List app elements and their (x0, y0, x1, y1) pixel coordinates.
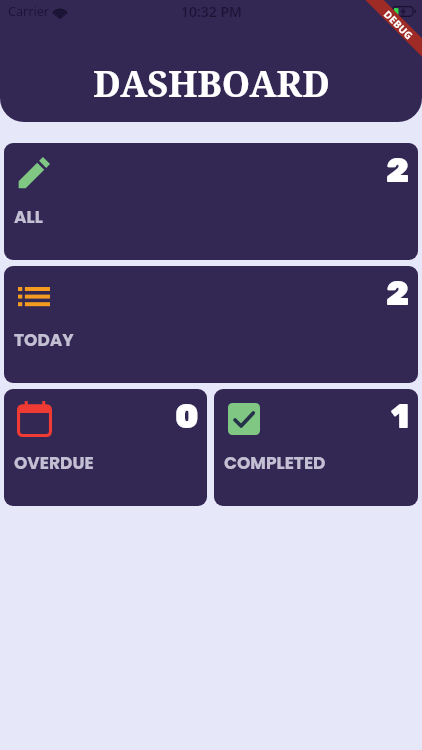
staticText: 0 (175, 397, 199, 436)
button[interactable]: 2 (4, 266, 418, 383)
staticText: 2 (386, 151, 410, 190)
staticText: 1 (391, 397, 410, 436)
staticText: ALL (14, 205, 43, 229)
staticText: DASHBOARD (93, 59, 330, 108)
staticText: Carrier (8, 3, 49, 20)
staticText: 2 (386, 274, 410, 313)
staticText: OVERDUE (14, 451, 94, 475)
staticText: 10:32 PM (181, 2, 242, 21)
staticText: TODAY (14, 328, 74, 352)
button[interactable]: 0 (4, 389, 207, 506)
staticText: DEBUG (382, 7, 416, 42)
staticText: COMPLETED (224, 451, 326, 475)
button[interactable]: 2 (4, 143, 418, 260)
button[interactable]: 1 (214, 389, 418, 506)
